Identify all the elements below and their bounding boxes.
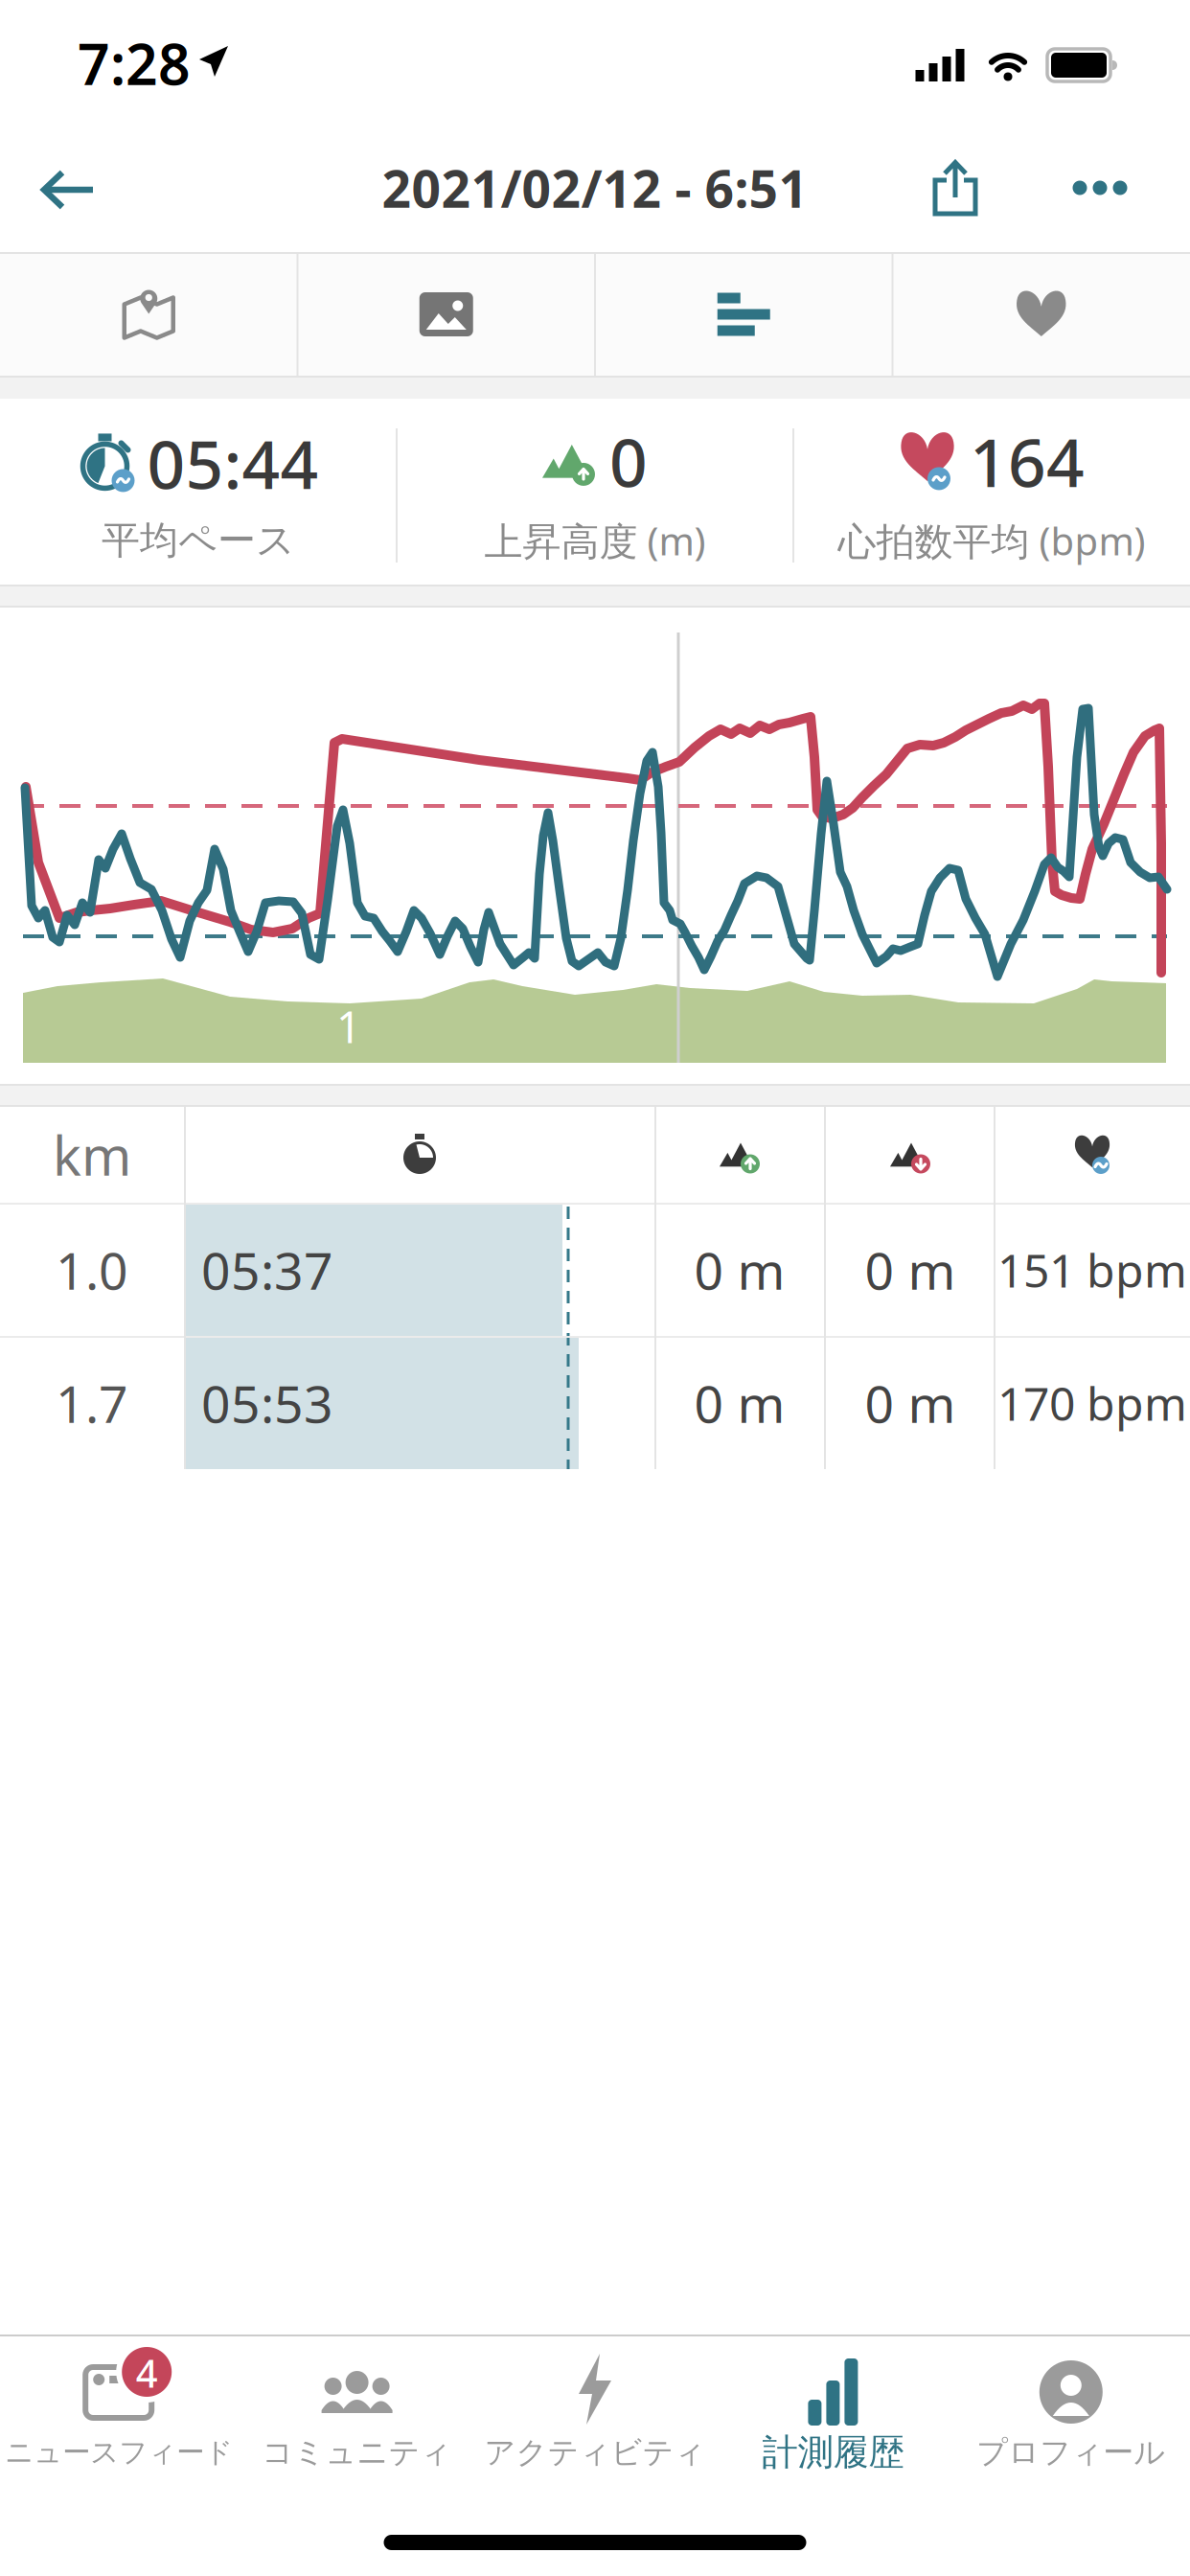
- staticText: アクティビティ: [484, 2433, 706, 2471]
- button[interactable]: Splits: [595, 254, 892, 376]
- staticText: 05:53: [201, 1369, 333, 1437]
- staticText: 7:28: [78, 26, 191, 101]
- button[interactable]: Map: [0, 254, 297, 376]
- staticText: 上昇高度 (m): [484, 515, 706, 566]
- staticText: 平均ペース: [102, 517, 295, 564]
- staticText: プロフィール: [977, 2433, 1165, 2471]
- staticText: 0 m: [694, 1236, 785, 1304]
- staticText: 1: [336, 998, 361, 1055]
- button[interactable]: Photos: [297, 254, 595, 376]
- staticText: 0 m: [865, 1369, 956, 1437]
- staticText: 151 bpm: [997, 1239, 1187, 1300]
- staticText: 164: [970, 417, 1085, 506]
- staticText: 170 bpm: [997, 1372, 1187, 1433]
- staticText: コミュニティ: [262, 2433, 452, 2471]
- staticText: km: [53, 1119, 131, 1190]
- staticText: 4: [136, 2347, 158, 2398]
- staticText: 0 m: [694, 1369, 785, 1437]
- staticText: 1.0: [56, 1236, 128, 1304]
- staticText: 心拍数平均 (bpm): [838, 515, 1145, 566]
- button[interactable]: アクティビティ: [476, 2336, 714, 2509]
- staticText: 計測履歴: [762, 2430, 904, 2474]
- button[interactable]: Likes: [892, 254, 1190, 376]
- staticText: ニュースフィード: [5, 2435, 233, 2470]
- button[interactable]: プロフィール: [952, 2336, 1190, 2509]
- button[interactable]: 計測履歴: [714, 2336, 952, 2509]
- staticText: 0 m: [865, 1236, 956, 1304]
- button[interactable]: More: [1072, 180, 1128, 195]
- staticText: 2021/02/12 - 6:51: [382, 154, 808, 222]
- button[interactable]: 4: [0, 2336, 238, 2509]
- staticText: 05:44: [147, 419, 319, 507]
- staticText: 05:37: [201, 1236, 333, 1304]
- staticText: 1.7: [56, 1369, 128, 1437]
- button[interactable]: Share: [932, 159, 978, 217]
- button[interactable]: Back: [39, 169, 99, 211]
- button[interactable]: コミュニティ: [238, 2336, 476, 2509]
- staticText: 0: [609, 417, 648, 506]
